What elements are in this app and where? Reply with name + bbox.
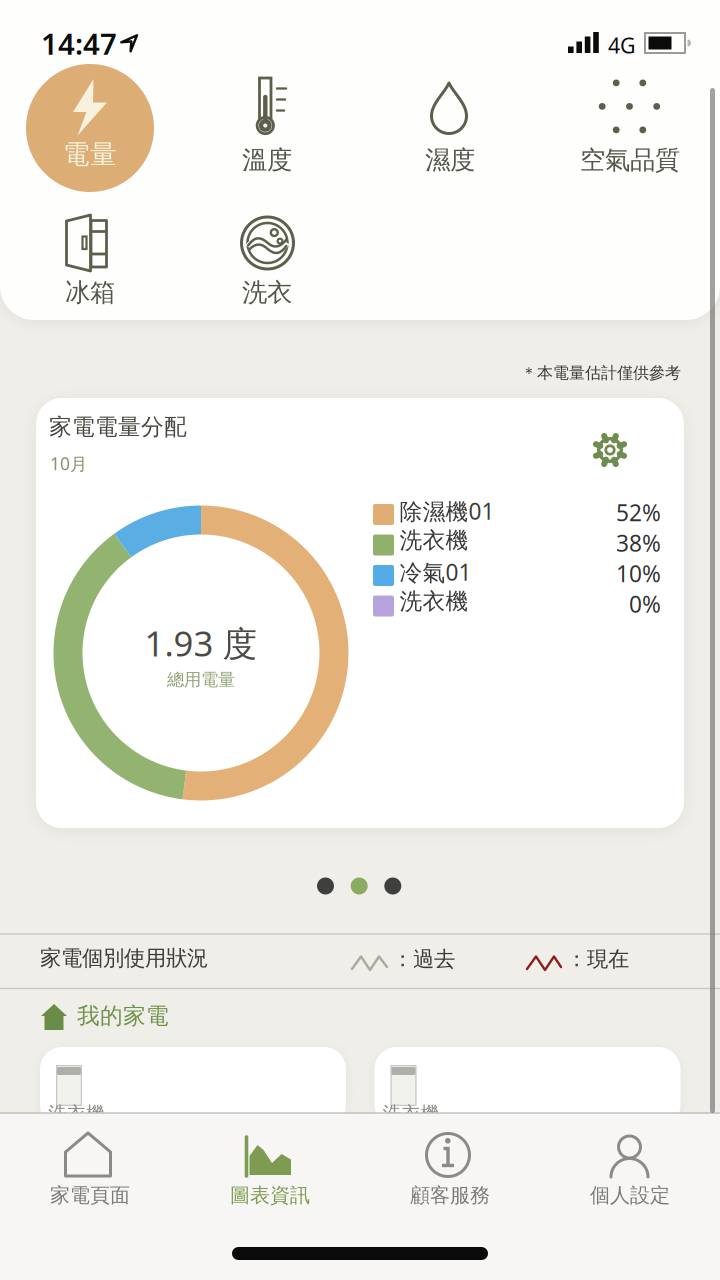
button[interactable]: 空氣品質 (560, 58, 700, 188)
staticText: 52% (616, 497, 661, 528)
staticText: 冰箱 (65, 277, 115, 308)
staticText: 洗衣機 (382, 1102, 439, 1125)
staticText: ：過去 (392, 946, 455, 972)
staticText: 顧客服務 (410, 1183, 490, 1208)
staticText: 個人設定 (590, 1183, 670, 1208)
button[interactable]: 圖表資訊 (180, 1113, 360, 1213)
button[interactable]: 洗衣機 (374, 1047, 680, 1127)
button[interactable]: 濕度 (380, 58, 520, 188)
staticText: 38% (616, 528, 661, 558)
button[interactable]: 溫度 (197, 58, 337, 188)
staticText: 家電頁面 (50, 1183, 130, 1208)
button[interactable]: 個人設定 (540, 1113, 720, 1213)
staticText: 洗衣機 (48, 1102, 105, 1125)
button[interactable]: 電量 (26, 64, 154, 192)
staticText: 洗衣機 (399, 526, 468, 554)
button[interactable]: 洗衣 (197, 205, 337, 320)
staticText: 家電個別使用狀況 (40, 945, 208, 971)
staticText: 除濕機01 (399, 496, 494, 526)
staticText: 洗衣 (242, 277, 292, 308)
staticText: 4G (608, 31, 636, 59)
staticText: 0% (629, 589, 661, 619)
staticText: 空氣品質 (580, 144, 680, 176)
button[interactable]: 顧客服務 (360, 1113, 540, 1213)
button[interactable]: 設定 (586, 426, 634, 474)
staticText: 14:47 (41, 24, 117, 63)
staticText: 10月 (50, 452, 87, 475)
staticText: 電量 (63, 138, 117, 171)
staticText: 10% (616, 558, 661, 589)
staticText: 家電電量分配 (49, 413, 187, 441)
button[interactable]: 冰箱 (20, 205, 160, 320)
staticText: 1.93 度 (144, 620, 257, 666)
staticText: 總用電量 (167, 669, 235, 690)
staticText: ：現在 (566, 946, 629, 972)
staticText: 洗衣機 (399, 587, 468, 615)
staticText: 溫度 (242, 144, 292, 176)
staticText: ＊本電量估計僅供參考 (521, 363, 681, 383)
staticText: 圖表資訊 (230, 1183, 310, 1208)
button[interactable]: 家電頁面 (0, 1113, 180, 1213)
staticText: 濕度 (425, 144, 475, 176)
staticText: 冷氣01 (399, 557, 471, 587)
button[interactable]: 洗衣機 (40, 1047, 346, 1127)
staticText: 我的家電 (77, 1002, 169, 1030)
